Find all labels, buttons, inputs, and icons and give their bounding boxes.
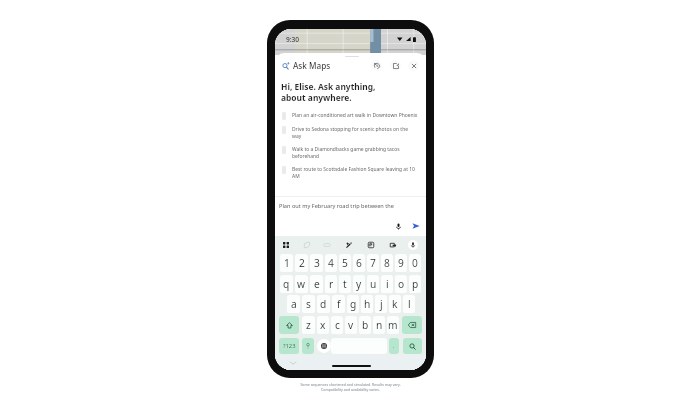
staticText: 5: [342, 256, 348, 270]
button[interactable]: c: [331, 316, 343, 334]
button[interactable]: GIF: [321, 239, 332, 250]
staticText: 4: [328, 256, 334, 270]
staticText: e: [314, 277, 320, 291]
button[interactable]: Shift: [279, 316, 299, 334]
button[interactable]: Best route to Scottsdale Fashion Square …: [275, 163, 426, 183]
button[interactable]: Translate: [365, 239, 376, 250]
button[interactable]: 5: [339, 254, 351, 272]
button[interactable]: m: [387, 316, 399, 334]
button[interactable]: Change language: [317, 339, 331, 353]
button[interactable]: z: [302, 316, 315, 334]
staticText: q: [283, 277, 290, 291]
button[interactable]: New chat: [390, 60, 401, 71]
staticText: ?123: [283, 342, 296, 350]
button[interactable]: 9: [395, 254, 407, 272]
staticText: k: [392, 297, 398, 311]
staticText: w: [297, 277, 306, 291]
staticText: 9: [398, 256, 404, 270]
button[interactable]: Emoji: [302, 338, 314, 354]
button[interactable]: p: [409, 275, 421, 293]
staticText: l: [408, 297, 411, 311]
button[interactable]: y: [353, 275, 365, 293]
staticText: a: [291, 297, 297, 311]
button[interactable]: q: [280, 275, 293, 293]
staticText: 3: [314, 256, 320, 270]
staticText: j: [380, 297, 383, 311]
staticText: 0: [412, 256, 418, 270]
button[interactable]: Voice input: [392, 220, 404, 232]
staticText: m: [388, 318, 398, 332]
staticText: i: [386, 277, 389, 291]
staticText: 8: [384, 256, 390, 270]
button[interactable]: j: [375, 295, 387, 313]
staticText: 7: [370, 256, 376, 270]
button[interactable]: Search: [403, 338, 422, 354]
staticText: d: [320, 297, 327, 311]
button[interactable]: 8: [381, 254, 393, 272]
staticText: Plan an air-conditioned art walk in Down…: [292, 112, 418, 119]
staticText: Some sequences shortened and simulated. …: [300, 382, 401, 387]
staticText: Walk to a Diamondbacks game grabbing tac…: [292, 146, 418, 160]
staticText: Hi, Elise. Ask anything, about anywhere.: [281, 81, 376, 103]
staticText: t: [343, 277, 347, 291]
button[interactable]: 4: [325, 254, 337, 272]
button[interactable]: History: [371, 60, 382, 71]
button[interactable]: i: [381, 275, 393, 293]
staticText: Ask Maps: [293, 60, 331, 71]
button[interactable]: l: [403, 295, 415, 313]
button[interactable]: g: [347, 295, 359, 313]
button[interactable]: x: [317, 316, 329, 334]
button[interactable]: w: [295, 275, 308, 293]
button[interactable]: Walk to a Diamondbacks game grabbing tac…: [275, 143, 426, 163]
staticText: z: [306, 318, 311, 332]
button[interactable]: e: [310, 275, 323, 293]
button[interactable]: Drive to Sedona stopping for scenic phot…: [275, 123, 426, 143]
button[interactable]: Ask Maps: [281, 61, 290, 70]
staticText: f: [337, 297, 341, 311]
staticText: r: [329, 277, 334, 291]
button[interactable]: 6: [353, 254, 365, 272]
button[interactable]: Backspace: [402, 316, 422, 334]
button[interactable]: Magic compose: [343, 239, 354, 250]
button[interactable]: t: [339, 275, 351, 293]
button[interactable]: r: [325, 275, 337, 293]
button[interactable]: Clipboard: [387, 239, 398, 250]
staticText: p: [412, 277, 419, 291]
button[interactable]: v: [345, 316, 357, 334]
button[interactable]: Send: [410, 220, 422, 232]
button[interactable]: Stickers: [301, 239, 312, 250]
button[interactable]: f: [332, 295, 345, 313]
button[interactable]: b: [359, 316, 371, 334]
staticText: 1: [284, 256, 290, 270]
staticText: .: [393, 342, 395, 350]
button[interactable]: a: [287, 295, 300, 313]
button[interactable]: n: [373, 316, 385, 334]
staticText: o: [398, 277, 405, 291]
button[interactable]: 0: [409, 254, 421, 272]
button[interactable]: k: [389, 295, 401, 313]
button[interactable]: ?123: [279, 338, 299, 354]
button[interactable]: 3: [310, 254, 323, 272]
button[interactable]: u: [367, 275, 379, 293]
staticText: u: [370, 277, 377, 291]
staticText: y: [356, 277, 362, 291]
staticText: Best route to Scottsdale Fashion Square …: [292, 166, 418, 180]
button[interactable]: Voice typing: [408, 240, 418, 250]
staticText: x: [320, 318, 326, 332]
button[interactable]: o: [395, 275, 407, 293]
staticText: Compatibility and availability varies.: [321, 387, 380, 392]
button[interactable]: Close: [408, 60, 419, 71]
button[interactable]: 1: [280, 254, 293, 272]
button[interactable]: d: [317, 295, 330, 313]
staticText: s: [306, 297, 311, 311]
staticText: g: [350, 297, 357, 311]
button[interactable]: s: [302, 295, 315, 313]
button[interactable]: 7: [367, 254, 379, 272]
button[interactable]: .: [389, 338, 399, 354]
button[interactable]: Plan an air-conditioned art walk in Down…: [275, 109, 426, 123]
button[interactable]: Apps: [280, 239, 291, 250]
staticText: h: [364, 297, 371, 311]
button[interactable]: h: [361, 295, 373, 313]
button[interactable]: 2: [295, 254, 308, 272]
